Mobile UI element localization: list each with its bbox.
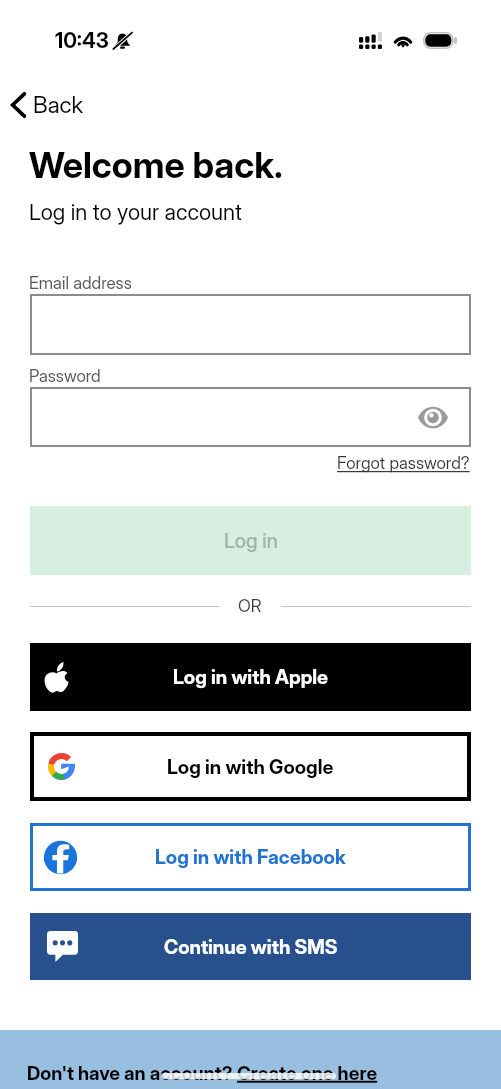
staticText: Log in with Facebook: [155, 845, 346, 869]
button[interactable]: Don't have an account?: [0, 1030, 501, 1089]
staticText: Log in with Google: [167, 755, 334, 779]
button[interactable]: Log in: [30, 506, 471, 575]
staticText: Log in to your account: [29, 199, 242, 226]
staticText: Back: [33, 91, 84, 119]
staticText: Don't have an account?: [27, 1062, 237, 1085]
staticText: 10:43: [55, 28, 109, 53]
button[interactable]: Create one here: [237, 1062, 378, 1085]
staticText: OR: [238, 596, 262, 617]
staticText: Log in: [224, 529, 278, 553]
staticText: Password: [29, 366, 101, 387]
staticText: Welcome back.: [29, 143, 283, 187]
staticText: Log in with Apple: [173, 665, 329, 689]
staticText: Continue with SMS: [164, 935, 338, 959]
button[interactable]: Back: [0, 88, 84, 122]
button[interactable]: Show password: [30, 387, 471, 447]
staticText: Email address: [29, 273, 132, 294]
button[interactable]: [30, 294, 471, 355]
button[interactable]: Log in with Apple: [30, 643, 471, 711]
button[interactable]: Log in with Facebook: [30, 823, 471, 891]
button[interactable]: Log in with Google: [30, 732, 471, 801]
button[interactable]: Continue with SMS: [30, 913, 471, 980]
button[interactable]: Forgot password?: [337, 453, 470, 474]
button[interactable]: Show password: [416, 400, 450, 434]
